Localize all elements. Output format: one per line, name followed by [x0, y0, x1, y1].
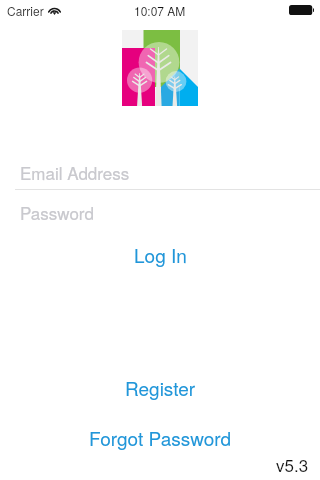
staticText: Forgot Password: [89, 424, 232, 451]
staticText: 10:07 AM: [134, 2, 186, 19]
button[interactable]: Log In: [0, 240, 320, 268]
staticText: Log In: [134, 241, 187, 268]
staticText: Carrier: [7, 2, 44, 19]
staticText: v5.3: [276, 452, 309, 476]
button[interactable]: Email Address: [0, 155, 320, 189]
staticText: Register: [125, 374, 196, 401]
staticText: Password: [20, 200, 94, 224]
button[interactable]: Register: [0, 373, 320, 401]
button[interactable]: Forgot Password: [0, 423, 320, 451]
staticText: Email Address: [20, 160, 130, 184]
button[interactable]: Password: [0, 195, 320, 229]
